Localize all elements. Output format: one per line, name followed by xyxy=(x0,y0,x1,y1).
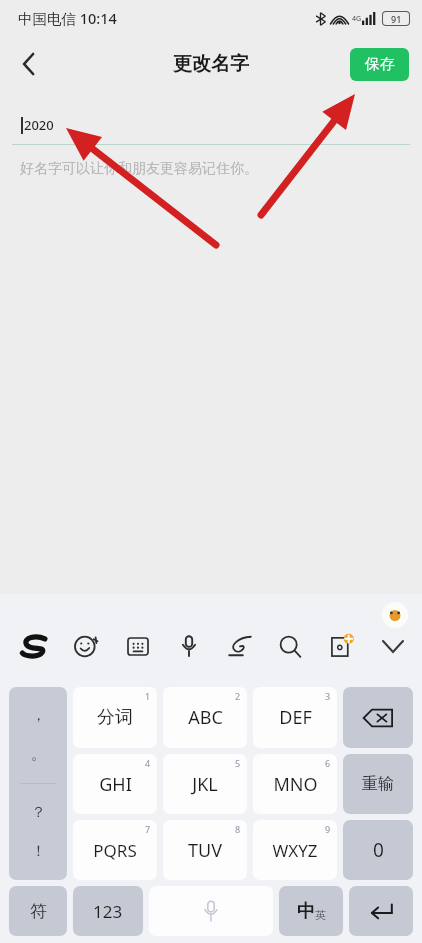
staticText: 5 xyxy=(235,757,241,769)
staticText: 4 xyxy=(145,757,151,769)
button[interactable]: Sogou input xyxy=(8,624,60,668)
staticText: 分词 xyxy=(97,706,133,729)
staticText: 123 xyxy=(93,900,123,923)
button[interactable]: Voice input xyxy=(163,624,214,668)
button[interactable]: JKL xyxy=(163,754,247,814)
button[interactable]: Search xyxy=(265,624,316,668)
staticText: 中国电信 10:14 xyxy=(18,8,117,28)
button[interactable]: WXYZ xyxy=(253,820,337,880)
staticText: 。 xyxy=(31,745,46,764)
button[interactable]: Back xyxy=(6,42,50,86)
staticText: ， xyxy=(31,706,46,725)
staticText: 91 xyxy=(391,13,402,25)
button[interactable]: Emoji xyxy=(60,624,112,668)
staticText: 8 xyxy=(235,823,241,835)
button[interactable]: MNO xyxy=(253,754,337,814)
button[interactable]: 符 xyxy=(9,886,67,936)
button[interactable]: Keyboard layout xyxy=(112,624,163,668)
button[interactable]: DEF xyxy=(253,687,337,748)
button[interactable]: ABC xyxy=(163,687,247,748)
staticText: 6 xyxy=(325,757,331,769)
staticText: 保存 xyxy=(365,55,395,74)
staticText: 好名字可以让你和朋友更容易记住你。 xyxy=(20,160,258,178)
button[interactable]: Collapse keyboard xyxy=(367,624,418,668)
button[interactable]: ， xyxy=(9,687,67,880)
staticText: 重输 xyxy=(362,774,394,794)
staticText: TUV xyxy=(188,838,222,863)
staticText: 3 xyxy=(325,690,331,702)
staticText: ABC xyxy=(188,705,223,730)
staticText: PQRS xyxy=(93,839,137,862)
staticText: 9 xyxy=(325,823,331,835)
button[interactable]: 保存 xyxy=(350,48,409,81)
button[interactable]: Add sticker xyxy=(316,624,367,668)
staticText: GHI xyxy=(99,772,132,797)
button[interactable]: Switch Chinese English xyxy=(279,886,343,936)
button[interactable]: 分词 xyxy=(73,687,157,748)
staticText: ！ xyxy=(31,842,46,861)
staticText: 2020 xyxy=(24,116,54,134)
staticText: WXYZ xyxy=(272,839,318,862)
staticText: 更改名字 xyxy=(173,52,249,76)
staticText: 7 xyxy=(145,823,151,835)
button[interactable]: 重输 xyxy=(343,754,413,814)
staticText: ？ xyxy=(31,803,46,822)
button[interactable]: 123 xyxy=(73,886,143,936)
button[interactable]: Handwriting xyxy=(214,624,265,668)
staticText: 符 xyxy=(30,901,47,922)
staticText: MNO xyxy=(273,772,318,797)
button[interactable]: PQRS xyxy=(73,820,157,880)
staticText: DEF xyxy=(279,705,312,730)
staticText: 英 xyxy=(315,908,326,922)
staticText: JKL xyxy=(192,772,218,797)
button[interactable]: Enter xyxy=(349,886,413,936)
button[interactable]: Assistant avatar xyxy=(382,602,408,628)
button[interactable]: Space, voice input xyxy=(149,886,273,936)
staticText: 4G xyxy=(352,14,362,24)
button[interactable]: GHI xyxy=(73,754,157,814)
button[interactable]: 0 xyxy=(343,820,413,880)
staticText: 0 xyxy=(373,837,384,863)
staticText: 中 xyxy=(297,900,315,923)
button[interactable]: TUV xyxy=(163,820,247,880)
staticText: 1 xyxy=(145,690,151,702)
button[interactable]: Delete xyxy=(343,687,413,748)
staticText: 2 xyxy=(235,690,241,702)
